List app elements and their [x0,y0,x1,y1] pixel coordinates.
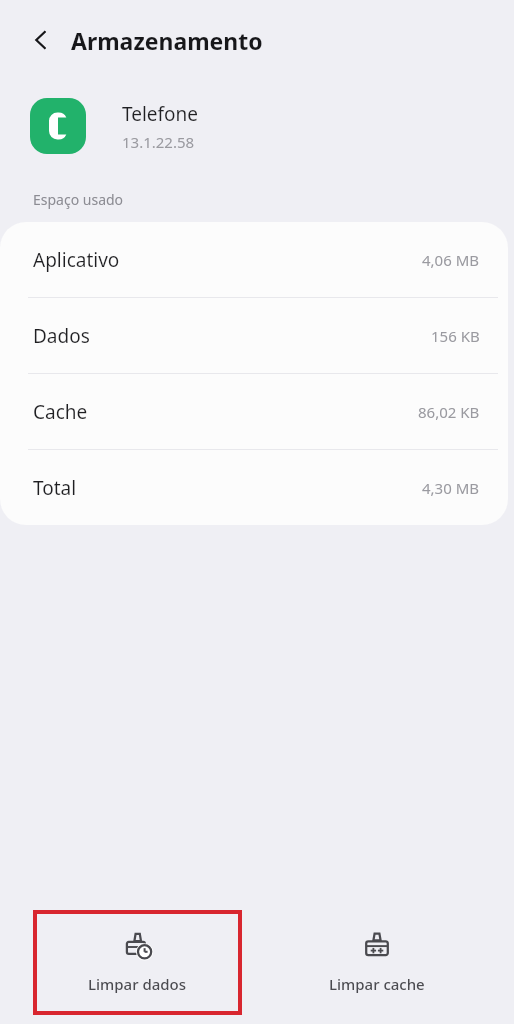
staticText: 86,02 KB [418,402,480,422]
button[interactable]: Limpar cache [274,912,479,1013]
staticText: Espaço usado [33,190,124,209]
button[interactable]: Back [20,18,64,62]
staticText: 4,06 MB [422,250,480,270]
staticText: Limpar dados [88,974,187,994]
button[interactable]: Dados [0,298,508,373]
button[interactable]: Aplicativo [0,222,508,297]
staticText: Limpar cache [329,974,425,994]
staticText: Dados [33,323,90,349]
button[interactable]: Limpar dados [35,912,240,1013]
staticText: Cache [33,399,88,425]
staticText: 156 KB [431,326,480,346]
staticText: Telefone [122,101,199,127]
button[interactable]: Total [0,450,508,525]
staticText: Armazenamento [71,25,263,56]
button[interactable]: Cache [0,374,508,449]
staticText: 13.1.22.58 [122,132,195,152]
staticText: 4,30 MB [422,478,480,498]
staticText: Aplicativo [33,247,120,273]
staticText: Total [33,475,77,501]
